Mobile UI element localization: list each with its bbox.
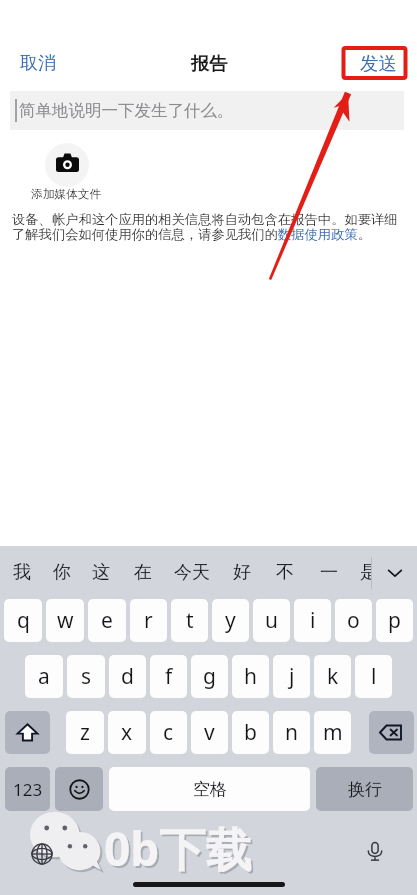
button[interactable]: 在	[122, 546, 164, 599]
button[interactable]: 发送	[350, 46, 407, 81]
button[interactable]: 简单地说明一下发生了什么。	[10, 91, 404, 130]
staticText: 0b下载	[104, 817, 252, 880]
staticText: o	[347, 606, 360, 635]
button[interactable]: i	[294, 599, 331, 642]
staticText: g	[203, 662, 216, 691]
staticText: 好	[233, 561, 251, 584]
staticText: c	[163, 718, 174, 747]
button[interactable]: o	[335, 599, 372, 642]
button[interactable]: q	[4, 599, 42, 642]
button[interactable]: u	[253, 599, 290, 642]
button[interactable]: f	[150, 655, 187, 698]
button[interactable]: 这	[81, 546, 121, 599]
staticText: 123	[13, 778, 43, 801]
button[interactable]: t	[171, 599, 208, 642]
staticText: 你	[53, 561, 71, 584]
button[interactable]: 你	[42, 546, 82, 599]
staticText: i	[310, 606, 316, 635]
staticText: 这	[92, 561, 110, 584]
button[interactable]: y	[212, 599, 249, 642]
staticText: 是	[360, 561, 371, 584]
button[interactable]: 123	[5, 767, 50, 811]
button[interactable]: 取消	[10, 46, 66, 81]
staticText: q	[17, 606, 30, 635]
staticText: l	[371, 662, 377, 691]
button[interactable]: a	[25, 655, 63, 698]
button[interactable]: 一	[307, 546, 351, 599]
button[interactable]: j	[273, 655, 310, 698]
staticText: d	[121, 662, 134, 691]
button[interactable]: b	[232, 711, 269, 754]
button[interactable]: Backspace	[369, 711, 414, 754]
staticText: x	[121, 718, 133, 747]
button[interactable]: g	[191, 655, 228, 698]
staticText: 0b下载	[106, 819, 254, 882]
button[interactable]: n	[273, 711, 310, 754]
staticText: 我	[13, 561, 31, 584]
button[interactable]: Hide keyboard	[372, 546, 417, 599]
button[interactable]: 空格	[109, 767, 310, 811]
button[interactable]: z	[66, 711, 104, 754]
button[interactable]: c	[150, 711, 187, 754]
staticText: h	[244, 662, 257, 691]
staticText: v	[204, 718, 215, 747]
button[interactable]: r	[130, 599, 167, 642]
button[interactable]: m	[314, 711, 351, 754]
button[interactable]: 是	[348, 546, 371, 599]
staticText: e	[101, 606, 113, 635]
staticText: j	[289, 662, 295, 691]
staticText: y	[225, 606, 236, 635]
button[interactable]: 我	[2, 546, 42, 599]
staticText: k	[327, 662, 339, 691]
button[interactable]: v	[191, 711, 228, 754]
staticText: p	[388, 606, 401, 635]
staticText: u	[265, 606, 278, 635]
staticText: s	[81, 662, 92, 691]
staticText: 发送	[360, 52, 397, 75]
button[interactable]: Change language	[28, 840, 56, 868]
button[interactable]: 今天	[163, 546, 221, 599]
staticText: w	[57, 606, 74, 635]
staticText: m	[323, 718, 343, 747]
button[interactable]: d	[109, 655, 146, 698]
button[interactable]: k	[314, 655, 351, 698]
button[interactable]: x	[108, 711, 146, 754]
button[interactable]: 好	[218, 546, 266, 599]
staticText: 换行	[348, 779, 382, 800]
staticText: f	[165, 662, 173, 691]
staticText: 今天	[174, 561, 210, 584]
button[interactable]: Dictate	[361, 837, 389, 865]
staticText: 设备、帐户和这个应用的相关信息将自动包含在报告中。如要详细了解我们会如何使用你的…	[12, 211, 399, 243]
staticText: 简单地说明一下发生了什么。	[19, 100, 234, 121]
button[interactable]: 换行	[316, 767, 413, 811]
staticText: z	[80, 718, 90, 747]
staticText: 取消	[20, 52, 56, 75]
staticText: 在	[134, 561, 152, 584]
button[interactable]: w	[46, 599, 84, 642]
staticText: n	[285, 718, 298, 747]
button[interactable]: Emoji	[55, 767, 103, 811]
button[interactable]: 添加媒体文件	[31, 143, 102, 202]
button[interactable]: l	[355, 655, 392, 698]
button[interactable]: 不	[264, 546, 306, 599]
button[interactable]: s	[67, 655, 105, 698]
staticText: b	[244, 718, 257, 747]
staticText: r	[144, 606, 153, 635]
button[interactable]: p	[376, 599, 413, 642]
staticText: 一	[320, 561, 338, 584]
button[interactable]: e	[88, 599, 126, 642]
staticText: 报告	[191, 53, 227, 76]
staticText: 空格	[193, 779, 227, 800]
button[interactable]: Shift	[5, 711, 50, 754]
staticText: t	[186, 606, 194, 635]
staticText: 不	[276, 561, 294, 584]
button[interactable]: h	[232, 655, 269, 698]
staticText: 添加媒体文件	[31, 187, 102, 202]
staticText: a	[38, 662, 50, 691]
